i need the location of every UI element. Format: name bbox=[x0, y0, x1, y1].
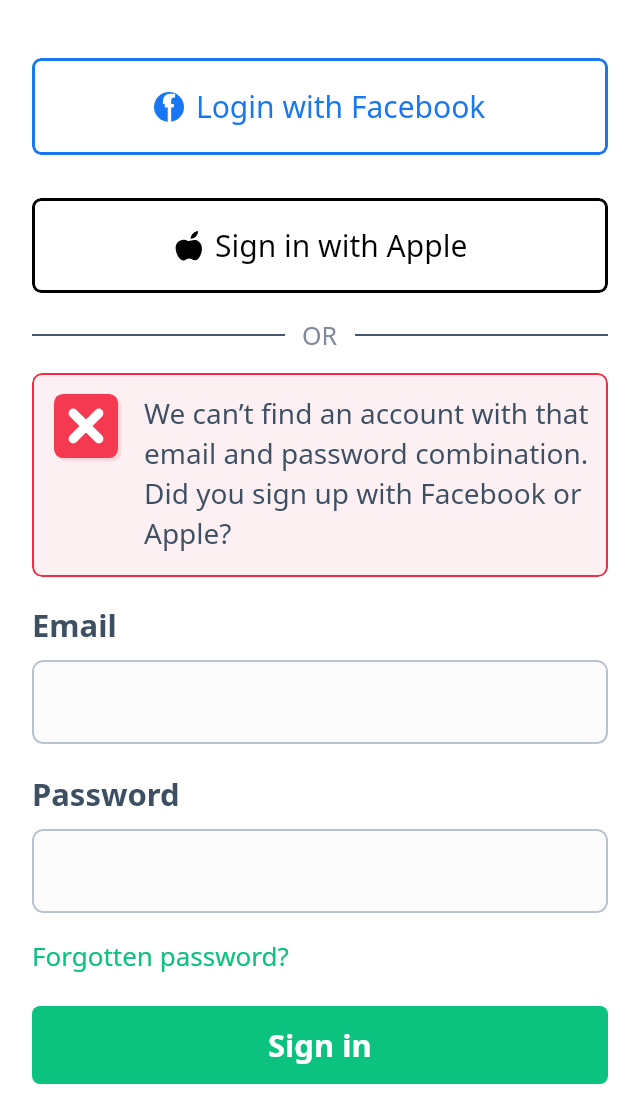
button[interactable]: Apple bbox=[32, 198, 608, 293]
button[interactable] bbox=[32, 829, 608, 913]
staticText: Sign in with Apple bbox=[215, 225, 468, 266]
button[interactable]: Facebook bbox=[32, 58, 608, 155]
button[interactable]: Forgotten password? bbox=[32, 938, 289, 973]
other: Error bbox=[54, 394, 118, 458]
staticText: Login with Facebook bbox=[196, 86, 486, 127]
staticText: Sign in bbox=[268, 1024, 372, 1066]
button[interactable]: Sign in bbox=[32, 1006, 608, 1084]
other: Apple bbox=[173, 231, 203, 261]
staticText: Forgotten password? bbox=[32, 938, 289, 973]
other: Facebook bbox=[154, 92, 184, 122]
staticText: OR bbox=[302, 318, 338, 352]
staticText: Email bbox=[32, 604, 117, 646]
button[interactable] bbox=[32, 660, 608, 744]
staticText: Password bbox=[32, 773, 180, 815]
staticText: We can’t find an account with that email… bbox=[144, 394, 590, 553]
